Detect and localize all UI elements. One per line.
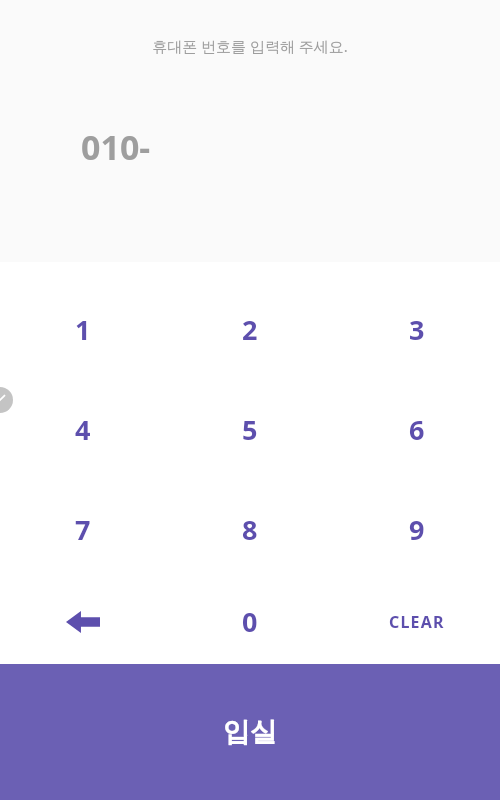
staticText: 3 [409, 311, 425, 348]
button[interactable]: 9 [333, 479, 500, 579]
button[interactable]: 6 [333, 379, 500, 479]
button[interactable]: 8 [166, 479, 333, 579]
button[interactable]: 7 [0, 479, 166, 579]
button[interactable]: 3 [333, 279, 500, 379]
staticText: 010- [81, 124, 151, 170]
staticText: 0 [242, 603, 258, 640]
button[interactable]: 1 [0, 279, 166, 379]
button[interactable]: Backspace [0, 579, 166, 664]
staticText: CLEAR [389, 611, 445, 633]
button[interactable]: 5 [166, 379, 333, 479]
staticText: 7 [75, 511, 91, 548]
staticText: 입실 [223, 715, 277, 749]
staticText: 9 [409, 511, 425, 548]
button[interactable]: 0 [166, 579, 333, 664]
staticText: 1 [75, 311, 91, 348]
staticText: 2 [242, 311, 258, 348]
button[interactable]: 4 [0, 379, 166, 479]
button[interactable]: CLEAR [333, 579, 500, 664]
staticText: 4 [75, 411, 91, 448]
button[interactable]: 2 [166, 279, 333, 379]
staticText: 휴대폰 번호를 입력해 주세요. [0, 36, 500, 56]
staticText: 8 [242, 511, 258, 548]
button[interactable]: 입실 [0, 664, 500, 800]
staticText: 6 [409, 411, 425, 448]
staticText: 5 [242, 411, 258, 448]
button[interactable]: Edit [0, 387, 13, 413]
